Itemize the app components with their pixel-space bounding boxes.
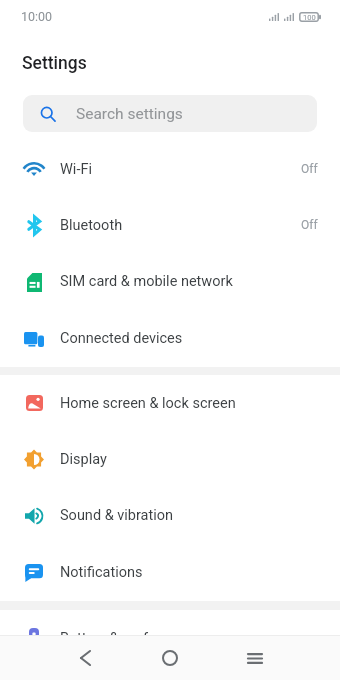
staticText: SIM card & mobile network [60,273,233,290]
button[interactable]: Search settings [23,95,317,132]
button[interactable]: Home [146,636,194,680]
staticText: Display [60,451,107,468]
staticText: Wi-Fi [60,161,92,178]
button[interactable]: Battery & performance [0,610,340,666]
staticText: Connected devices [60,330,183,347]
staticText: Battery & performance [60,630,206,647]
button[interactable]: Home screen & lock screen [0,375,340,431]
staticText: Settings [22,53,87,74]
button[interactable]: SIM card & mobile network [0,253,340,310]
staticText: Sound & vibration [60,507,174,524]
button[interactable]: Connected devices [0,310,340,367]
staticText: Home screen & lock screen [60,395,236,412]
button[interactable]: Sound & vibration [0,487,340,544]
button[interactable]: Bluetooth [0,197,340,253]
staticText: Off [301,218,318,232]
staticText: Bluetooth [60,217,123,234]
button[interactable]: Recent apps [231,636,279,680]
staticText: 100 [303,13,316,22]
staticText: Search settings [76,105,183,123]
staticText: Notifications [60,564,143,581]
staticText: 10:00 [21,9,53,24]
button[interactable]: Notifications [0,544,340,601]
button[interactable]: Wi-Fi [0,141,340,197]
button[interactable]: Display [0,431,340,487]
staticText: Off [301,162,318,176]
button[interactable]: Back [61,636,109,680]
